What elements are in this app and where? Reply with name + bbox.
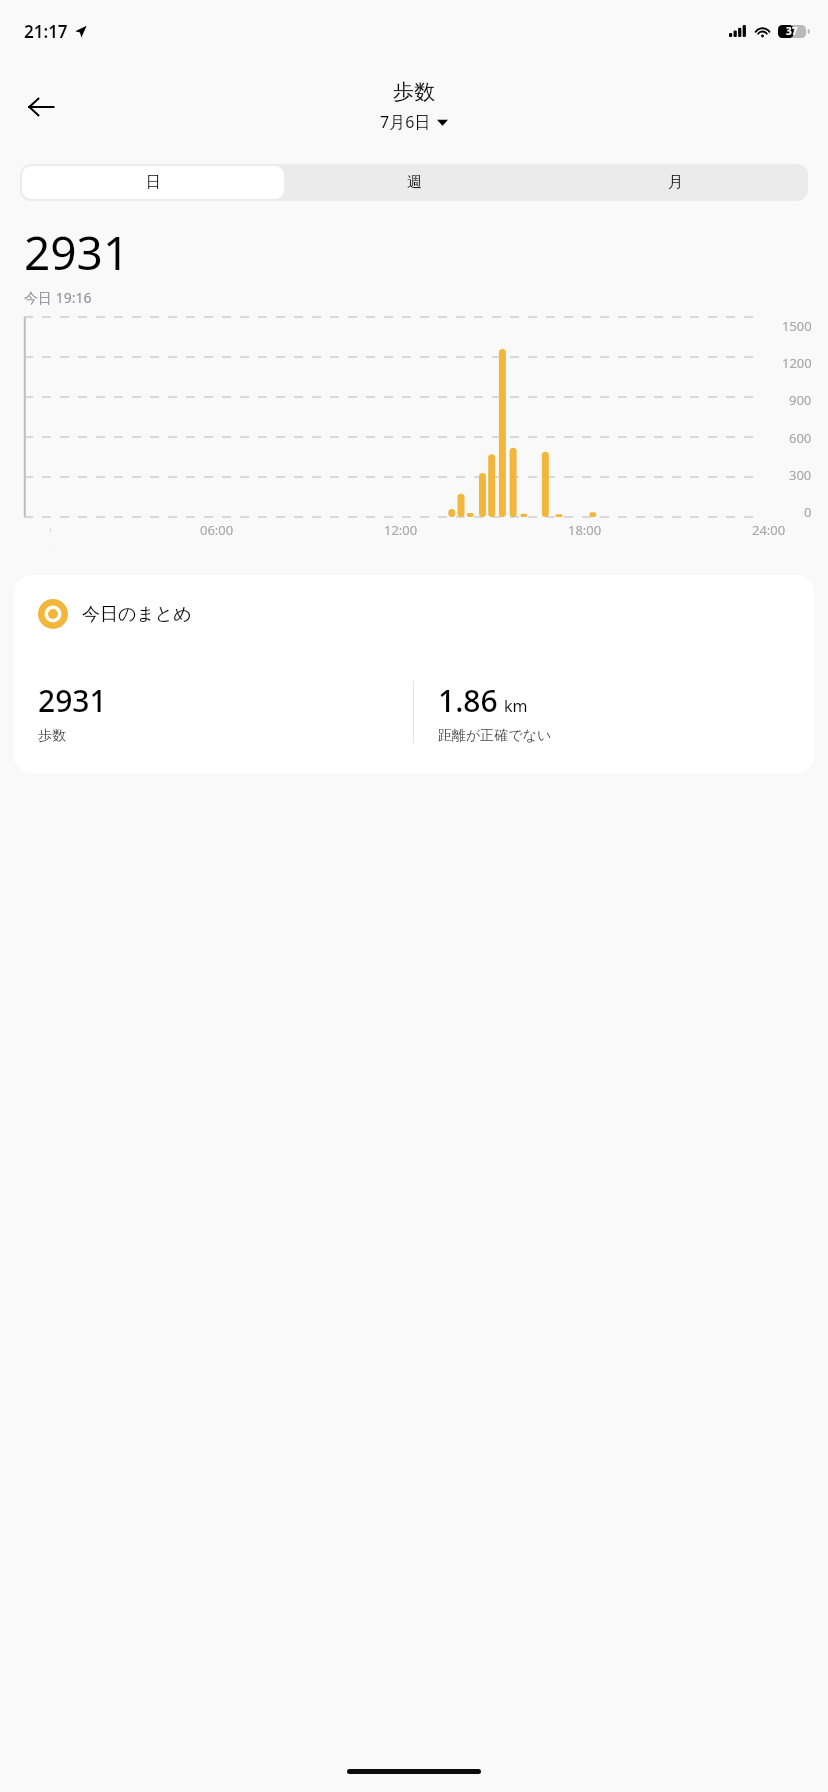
staticText: 600	[789, 429, 812, 443]
staticText: 37	[786, 24, 798, 38]
staticText: 今日のまとめ	[82, 603, 192, 626]
button[interactable]: 日	[22, 166, 284, 199]
staticText: 歩数	[38, 727, 66, 745]
button[interactable]: Back	[14, 80, 68, 134]
staticText: 距離が正確でない	[438, 727, 552, 745]
staticText: 18:00	[568, 521, 602, 539]
staticText: 21:17	[24, 20, 68, 43]
button[interactable]: 週	[284, 166, 545, 199]
staticText: 24:00	[752, 521, 786, 539]
staticText: 1500	[782, 317, 812, 331]
staticText: 0	[804, 503, 812, 517]
staticText: 月	[668, 173, 683, 192]
button[interactable]: 7月6日	[376, 109, 452, 135]
staticText: 06:00	[200, 521, 234, 539]
staticText: 週	[407, 173, 422, 192]
button[interactable]: 月	[545, 166, 806, 199]
staticText: 7月6日	[380, 111, 431, 133]
staticText: 日	[146, 173, 161, 192]
staticText: 1.86	[438, 680, 498, 721]
staticText: 2931	[24, 221, 130, 284]
staticText: km	[504, 695, 528, 717]
button[interactable]: 今日のまとめ	[14, 575, 814, 773]
staticText: 12:00	[384, 521, 418, 539]
staticText: 歩数	[393, 79, 435, 105]
staticText: 300	[789, 466, 812, 480]
staticText: 900	[789, 391, 812, 405]
staticText: 1200	[782, 354, 812, 368]
staticText: 00:00	[50, 521, 51, 547]
staticText: 今日 19:16	[24, 288, 92, 307]
staticText: 2931	[38, 680, 107, 721]
